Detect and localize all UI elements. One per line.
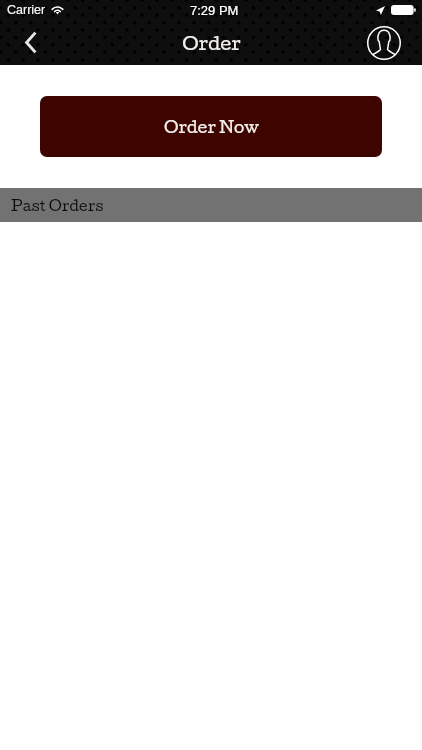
- staticText: Carrier: [7, 3, 46, 17]
- button[interactable]: Back: [25, 20, 59, 65]
- staticText: 7:29 PM: [190, 3, 239, 18]
- staticText: Order Now: [164, 117, 259, 136]
- staticText: Order: [182, 32, 241, 54]
- staticText: Past Orders: [11, 197, 104, 215]
- button[interactable]: Profile: [364, 23, 404, 63]
- button[interactable]: Order Now: [40, 96, 382, 157]
